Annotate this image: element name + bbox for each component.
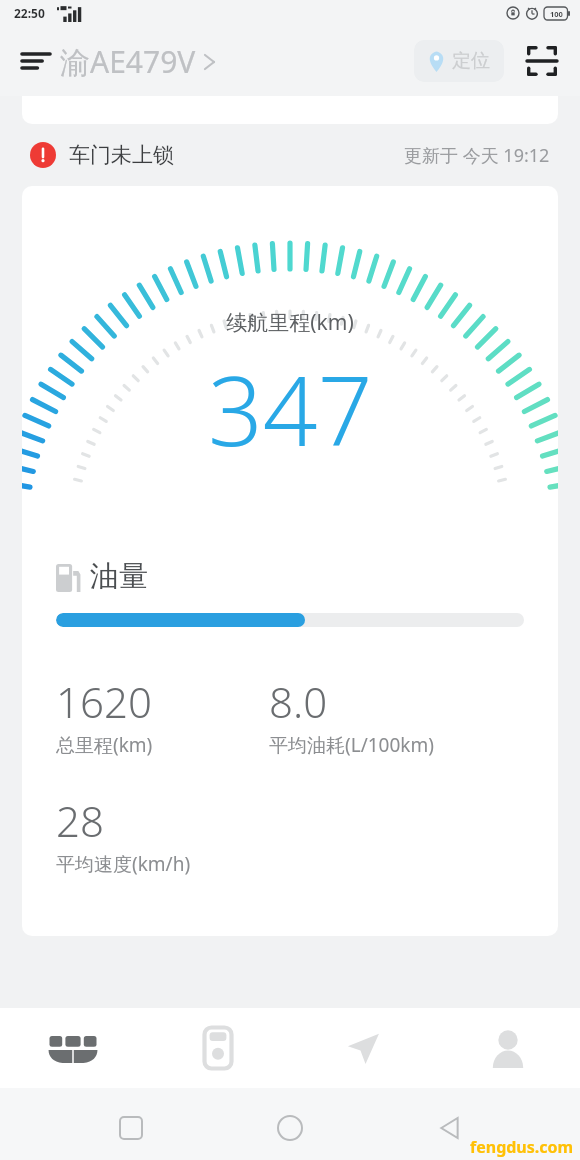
button[interactable]: Scan <box>518 37 566 85</box>
button[interactable]: 渝AE479V <box>60 41 216 82</box>
staticText: 1620 <box>56 673 152 730</box>
button[interactable]: 车门未上锁 <box>0 124 580 186</box>
staticText: 定位 <box>452 49 490 73</box>
button[interactable]: Menu <box>14 39 58 83</box>
staticText: 8.0 <box>269 673 328 730</box>
button[interactable]: Back <box>421 1100 477 1156</box>
staticText: 渝AE479V <box>60 41 196 82</box>
staticText: 100 <box>550 9 563 19</box>
staticText: 总里程(km) <box>56 732 153 758</box>
button[interactable]: 定位 <box>414 40 504 82</box>
staticText: 更新于 今天 19:12 <box>404 143 550 168</box>
staticText: 平均油耗(L/100km) <box>269 732 434 758</box>
staticText: 续航里程(km) <box>226 308 354 337</box>
button[interactable]: Remote <box>145 1008 290 1088</box>
button[interactable]: Home <box>262 1100 318 1156</box>
button[interactable]: Navigation <box>290 1008 435 1088</box>
button[interactable]: Recents <box>103 1100 159 1156</box>
staticText: fengdus.com <box>470 1136 574 1158</box>
button[interactable]: Vehicle <box>0 1008 145 1088</box>
button[interactable]: Profile <box>435 1008 580 1088</box>
staticText: 28 <box>56 792 104 849</box>
staticText: 22:50 <box>14 5 45 21</box>
staticText: 车门未上锁 <box>69 142 174 168</box>
staticText: 平均速度(km/h) <box>56 851 191 877</box>
staticText: 油量 <box>90 558 148 595</box>
staticText: 347 <box>208 343 373 474</box>
